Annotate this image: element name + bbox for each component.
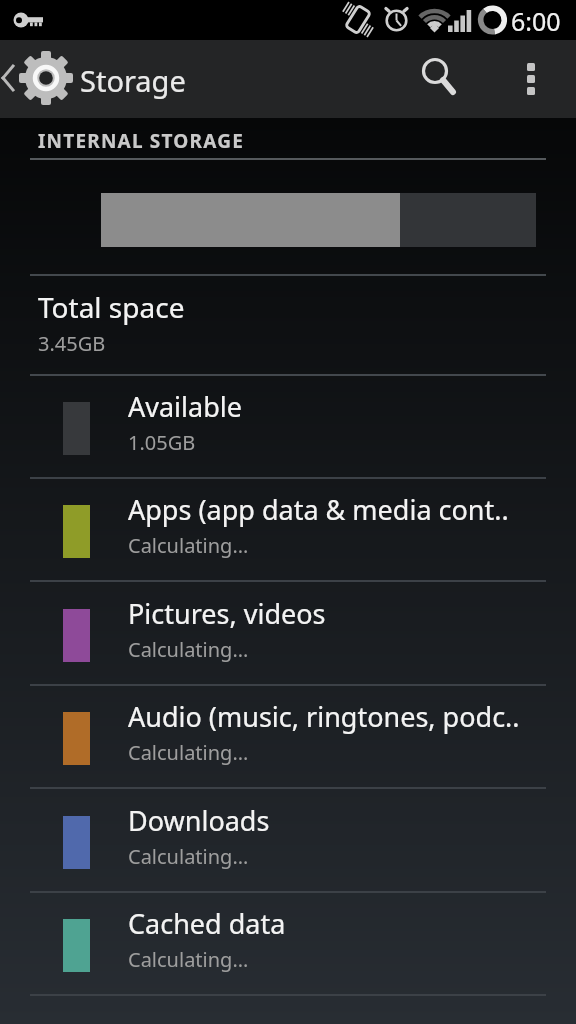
button[interactable] <box>504 40 558 118</box>
button[interactable]: Total space <box>0 278 576 374</box>
staticText: Pictures, videos <box>128 595 326 632</box>
staticText: Audio (music, ringtones, podc.. <box>128 698 520 735</box>
staticText: Available <box>128 388 242 425</box>
staticText: Calculating… <box>128 946 249 973</box>
button[interactable]: Cached data <box>0 893 576 996</box>
staticText: 1.05GB <box>128 429 196 456</box>
button[interactable] <box>0 40 78 118</box>
button[interactable] <box>404 51 468 107</box>
staticText: 3.45GB <box>38 330 106 357</box>
button[interactable]: Downloads <box>0 790 576 893</box>
staticText: Calculating… <box>128 636 249 663</box>
staticText: Total space <box>38 288 185 326</box>
button[interactable]: Pictures, videos <box>0 583 576 686</box>
staticText: Storage <box>80 61 186 100</box>
staticText: Apps (app data & media cont.. <box>128 491 509 528</box>
button[interactable]: Audio (music, ringtones, podc.. <box>0 686 576 789</box>
staticText: Cached data <box>128 905 286 942</box>
staticText: INTERNAL STORAGE <box>38 128 244 154</box>
staticText: 6:00 <box>511 4 561 38</box>
staticText: Calculating… <box>128 739 249 766</box>
staticText: Downloads <box>128 802 270 839</box>
staticText: Calculating… <box>128 843 249 870</box>
button[interactable]: Apps (app data & media cont.. <box>0 479 576 582</box>
staticText: Calculating… <box>128 532 249 559</box>
button[interactable]: Available <box>0 376 576 479</box>
